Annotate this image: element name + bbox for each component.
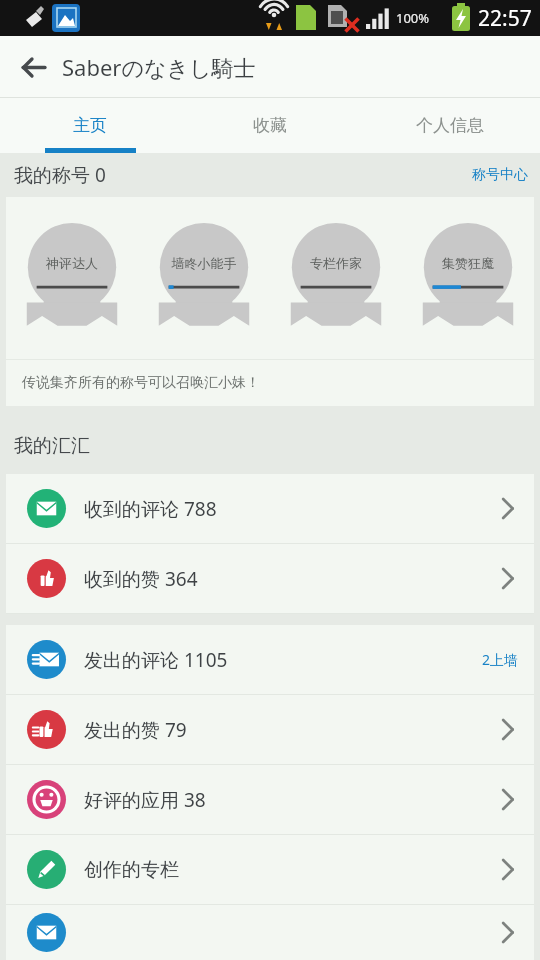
staticText: 发出的评论 1105	[84, 647, 482, 673]
button[interactable]: 专栏作家	[270, 197, 402, 359]
button[interactable]: 个人信息	[360, 98, 540, 153]
staticText: 好评的应用 38	[84, 787, 496, 813]
other: Open	[496, 568, 517, 589]
staticText: 收藏	[253, 115, 287, 136]
staticText: 100%	[396, 9, 430, 27]
button[interactable]: Back	[9, 43, 57, 91]
staticText: 我的汇汇	[14, 434, 90, 458]
staticText: 我的称号 0	[14, 162, 106, 188]
button[interactable]: Open	[6, 905, 534, 960]
staticText: 墙咚小能手	[156, 255, 252, 271]
other: Open	[496, 859, 517, 880]
button[interactable]: 收藏	[180, 98, 360, 153]
other: Open	[496, 719, 517, 740]
button[interactable]: 创作的专栏	[6, 835, 534, 904]
staticText: 称号中心	[472, 166, 528, 184]
staticText: 22:57	[478, 4, 532, 33]
other: Open	[496, 789, 517, 810]
staticText: 主页	[73, 115, 107, 136]
button[interactable]: 称号中心	[466, 159, 534, 191]
staticText: 创作的专栏	[84, 858, 496, 882]
staticText: 传说集齐所有的称号可以召唤汇小妹！	[22, 374, 260, 392]
staticText: 收到的赞 364	[84, 566, 496, 592]
staticText: 发出的赞 79	[84, 717, 496, 743]
button[interactable]: 发出的评论 1105	[6, 625, 534, 694]
other: Open	[496, 498, 517, 519]
staticText: 专栏作家	[288, 255, 384, 271]
other: Open	[496, 922, 517, 943]
button[interactable]: 发出的赞 79	[6, 695, 534, 764]
staticText: 神评达人	[24, 255, 120, 271]
staticText: 2上墙	[482, 650, 519, 669]
button[interactable]: 收到的评论 788	[6, 474, 534, 543]
staticText: 收到的评论 788	[84, 496, 496, 522]
button[interactable]: 收到的赞 364	[6, 544, 534, 613]
button[interactable]: 主页	[0, 98, 180, 153]
button[interactable]: 墙咚小能手	[138, 197, 270, 359]
button[interactable]: 集赞狂魔	[402, 197, 534, 359]
button[interactable]: 好评的应用 38	[6, 765, 534, 834]
button[interactable]: 神评达人	[6, 197, 138, 359]
staticText: 集赞狂魔	[420, 255, 516, 271]
staticText: Saberのなきし騎士	[62, 52, 256, 82]
staticText: 个人信息	[416, 115, 484, 136]
